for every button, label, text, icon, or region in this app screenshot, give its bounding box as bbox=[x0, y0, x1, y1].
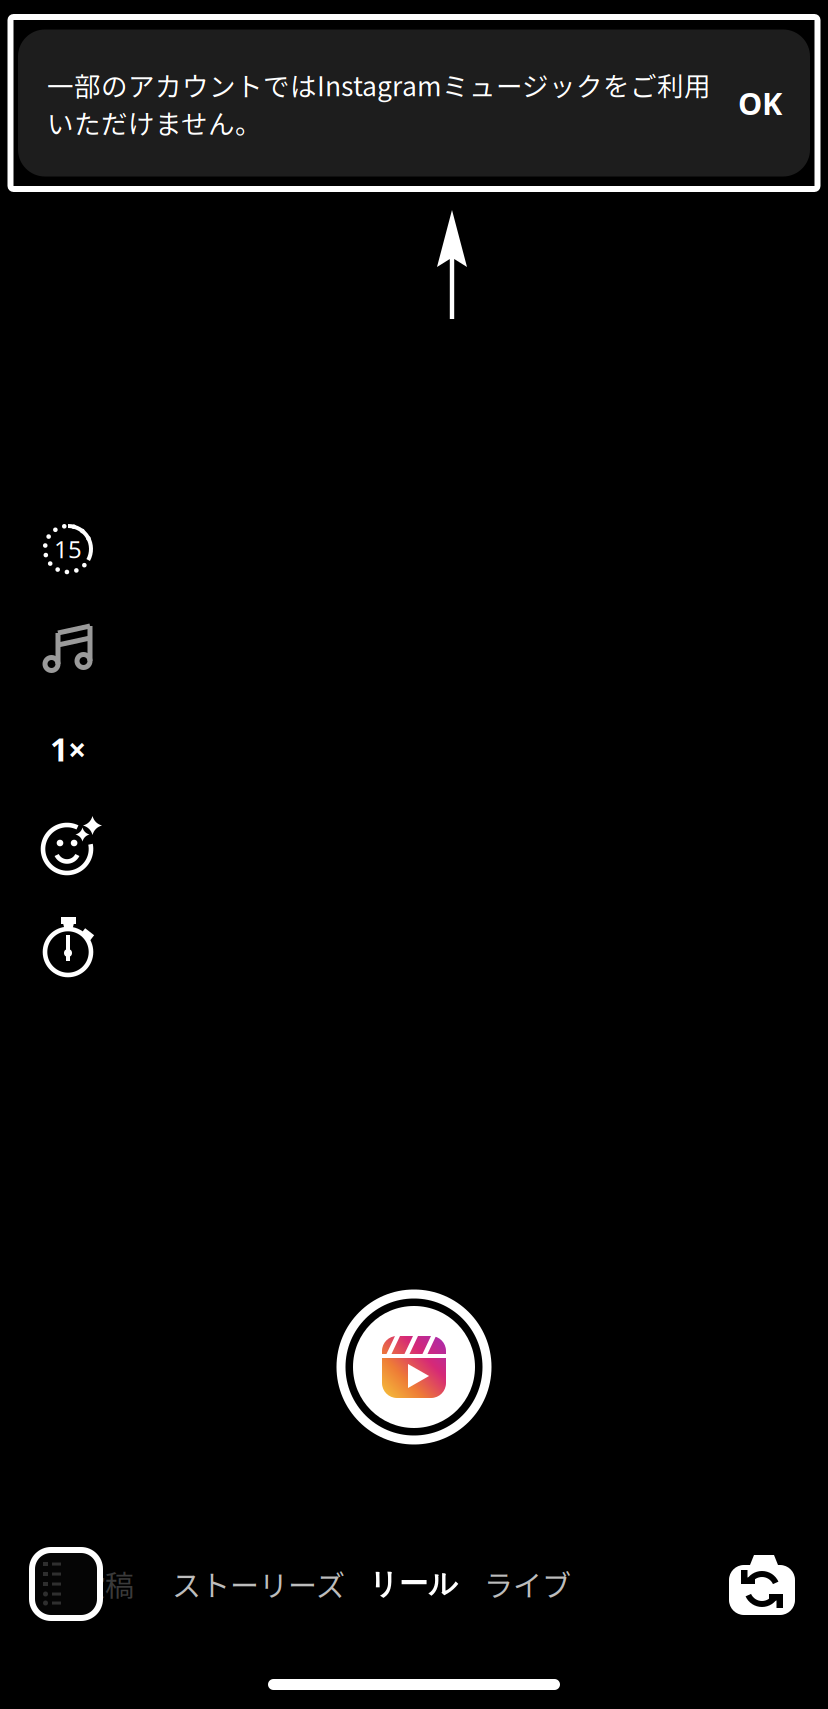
button[interactable]: Gallery bbox=[32, 1550, 100, 1618]
staticText: リール bbox=[369, 1566, 458, 1602]
button[interactable]: Switch camera bbox=[729, 1553, 795, 1615]
button[interactable]: Record bbox=[334, 1287, 494, 1447]
staticText: ストーリーズ bbox=[172, 1563, 345, 1605]
staticText: いただけません。 bbox=[47, 103, 262, 141]
staticText: 投稿 bbox=[76, 1563, 134, 1605]
staticText: 15 bbox=[54, 533, 82, 565]
button[interactable]: 一部のアカウントではInstagramミュージックをご利用 bbox=[18, 29, 810, 176]
staticText: OK bbox=[738, 83, 782, 123]
staticText: 一部のアカウントではInstagramミュージックをご利用 bbox=[47, 66, 711, 104]
staticText: ライブ bbox=[484, 1563, 571, 1605]
staticText: 1× bbox=[50, 728, 86, 770]
